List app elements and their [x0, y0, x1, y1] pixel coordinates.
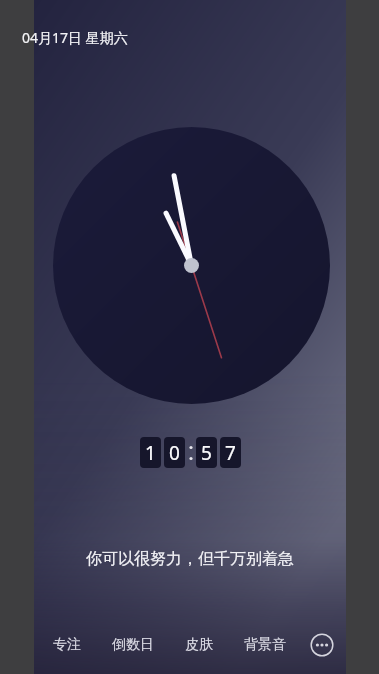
button[interactable]: More options — [298, 616, 346, 674]
staticText: 7 — [225, 440, 236, 466]
staticText: 0 — [169, 440, 180, 466]
staticText: 背景音 — [244, 636, 286, 654]
button[interactable]: 背景音 — [232, 616, 298, 674]
staticText: 5 — [201, 440, 212, 466]
button[interactable]: 专注 — [34, 616, 100, 674]
staticText: 1 — [145, 440, 156, 466]
staticText: 04月17日 星期六 — [22, 28, 128, 47]
staticText: 皮肤 — [185, 636, 213, 654]
staticText: 你可以很努力，但千万别着急 — [34, 549, 346, 569]
button[interactable]: 倒数日 — [100, 616, 166, 674]
staticText: 专注 — [53, 636, 81, 654]
button[interactable]: 皮肤 — [166, 616, 232, 674]
staticText: 倒数日 — [112, 636, 154, 654]
